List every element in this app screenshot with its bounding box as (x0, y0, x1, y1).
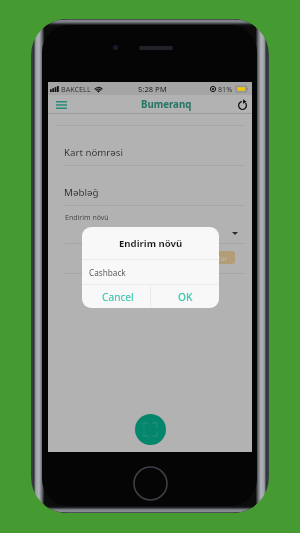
staticText: Kart nömrəsi (64, 146, 123, 159)
button[interactable]: Open navigation menu (52, 95, 71, 114)
button[interactable]: Göndər (194, 251, 235, 264)
button[interactable]: Refresh (233, 95, 252, 114)
staticText: Bumeranq (141, 98, 192, 111)
staticText: 5:28 PM (138, 84, 167, 94)
staticText: Endirim növü (119, 237, 183, 250)
staticText: Endirim növü (65, 213, 109, 223)
button[interactable]: OK (151, 285, 219, 308)
staticText: BAKCELL (61, 84, 91, 94)
staticText: Göndər (202, 253, 228, 263)
button[interactable]: Scan QR code (135, 414, 166, 445)
button[interactable]: Cancel (82, 285, 150, 308)
staticText: 81% (218, 84, 233, 94)
staticText: OK (178, 290, 193, 304)
staticText: Cancel (102, 290, 134, 304)
staticText: Məbləğ (64, 186, 99, 199)
staticText: Cashback (89, 267, 126, 278)
